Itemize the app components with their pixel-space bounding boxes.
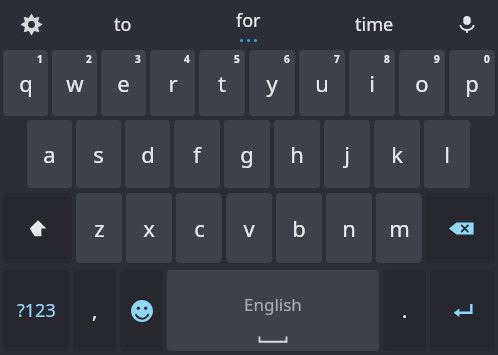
staticText: j <box>344 139 350 169</box>
staticText: f <box>193 139 201 169</box>
button[interactable]: time <box>312 0 436 48</box>
button[interactable]: Backspace <box>426 193 495 263</box>
button[interactable]: Emoji <box>120 270 163 351</box>
staticText: 7 <box>334 52 340 66</box>
staticText: h <box>290 139 304 169</box>
button[interactable]: u <box>299 50 345 116</box>
button[interactable]: k <box>374 120 420 188</box>
staticText: b <box>292 213 306 243</box>
staticText: for <box>236 8 261 33</box>
staticText: w <box>66 68 84 98</box>
button[interactable]: b <box>276 193 322 263</box>
staticText: 2 <box>86 52 92 66</box>
staticText: r <box>168 68 178 98</box>
staticText: n <box>342 213 356 243</box>
button[interactable]: ?123 <box>3 270 69 351</box>
button[interactable]: , <box>73 270 116 351</box>
button[interactable]: to <box>62 0 184 48</box>
button[interactable]: for <box>184 0 312 48</box>
button[interactable]: i <box>349 50 395 116</box>
button[interactable]: m <box>376 193 422 263</box>
staticText: m <box>389 213 410 243</box>
button[interactable]: t <box>199 50 245 116</box>
staticText: a <box>43 139 56 169</box>
staticText: time <box>355 12 394 37</box>
button[interactable]: f <box>174 120 220 188</box>
button[interactable]: h <box>274 120 320 188</box>
button[interactable]: o <box>399 50 445 116</box>
staticText: 3 <box>135 52 141 66</box>
button[interactable]: s <box>76 120 121 188</box>
staticText: s <box>93 139 104 169</box>
button[interactable]: English <box>167 270 379 351</box>
staticText: u <box>315 68 329 98</box>
staticText: l <box>444 139 450 169</box>
button[interactable]: g <box>224 120 270 188</box>
button[interactable]: d <box>125 120 170 188</box>
staticText: 4 <box>184 52 190 66</box>
staticText: z <box>94 213 105 243</box>
button[interactable]: Voice input <box>436 0 498 48</box>
staticText: , <box>92 297 98 324</box>
button[interactable]: Settings <box>0 0 62 48</box>
staticText: . <box>402 297 408 324</box>
staticText: x <box>143 213 155 243</box>
button[interactable]: y <box>249 50 295 116</box>
button[interactable]: e <box>101 50 146 116</box>
staticText: g <box>240 139 254 169</box>
button[interactable]: c <box>176 193 222 263</box>
staticText: e <box>117 68 130 98</box>
staticText: 8 <box>384 52 390 66</box>
staticText: q <box>19 68 33 98</box>
button[interactable]: . <box>383 270 426 351</box>
staticText: 6 <box>284 52 290 66</box>
staticText: to <box>114 12 132 37</box>
staticText: 0 <box>484 52 490 66</box>
button[interactable]: p <box>449 50 495 116</box>
button[interactable]: x <box>126 193 172 263</box>
staticText: v <box>243 213 255 243</box>
button[interactable]: z <box>76 193 122 263</box>
staticText: 5 <box>234 52 240 66</box>
staticText: y <box>266 68 278 98</box>
staticText: 9 <box>434 52 440 66</box>
button[interactable]: n <box>326 193 372 263</box>
button[interactable]: w <box>52 50 97 116</box>
staticText: 1 <box>37 52 43 66</box>
staticText: t <box>218 68 226 98</box>
staticText: d <box>141 139 155 169</box>
staticText: p <box>465 68 479 98</box>
button[interactable]: l <box>424 120 470 188</box>
staticText: English <box>244 293 302 316</box>
staticText: i <box>369 68 375 98</box>
button[interactable]: j <box>324 120 370 188</box>
button[interactable]: v <box>226 193 272 263</box>
staticText: c <box>194 213 205 243</box>
staticText: ?123 <box>17 298 56 323</box>
button[interactable]: Shift <box>3 193 72 263</box>
button[interactable]: Enter <box>430 270 495 351</box>
button[interactable]: a <box>27 120 72 188</box>
button[interactable]: q <box>3 50 48 116</box>
button[interactable]: r <box>150 50 195 116</box>
staticText: o <box>415 68 429 98</box>
staticText: k <box>391 139 403 169</box>
